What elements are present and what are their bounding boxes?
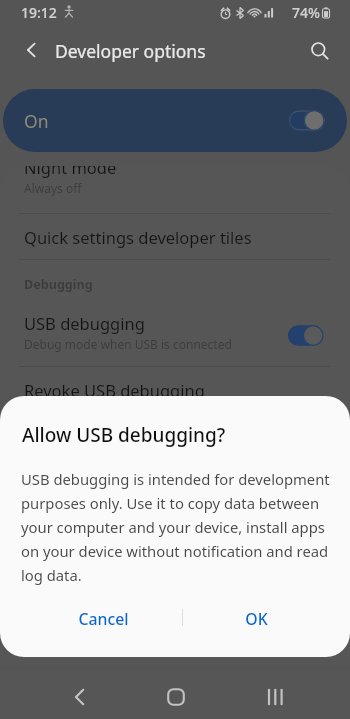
button[interactable]: Search (301, 32, 337, 68)
staticText: Always off (24, 180, 82, 196)
button[interactable]: OK (180, 595, 333, 643)
button[interactable]: On (3, 89, 347, 152)
button[interactable]: Cancel (27, 595, 180, 643)
button[interactable]: Night mode (0, 166, 350, 212)
staticText: USB debugging is intended for developmen… (21, 469, 333, 585)
staticText: 74% (292, 3, 320, 22)
staticText: OK (245, 608, 268, 630)
staticText: Revoke USB debugging (24, 379, 205, 401)
staticText: Debugging (24, 276, 93, 293)
staticText: Debug mode when USB is connected (24, 336, 232, 352)
staticText: Night mode (24, 166, 117, 178)
staticText: Developer options (55, 39, 206, 63)
button[interactable]: USB debugging (0, 305, 350, 366)
staticText: Cancel (78, 608, 129, 630)
button[interactable]: Recent apps (252, 679, 300, 715)
button[interactable]: Home (152, 679, 200, 715)
button[interactable]: Back (12, 32, 48, 68)
button[interactable]: Back (54, 679, 102, 715)
staticText: USB debugging (24, 312, 145, 334)
staticText: On (24, 109, 49, 133)
button[interactable]: Revoke USB debugging (0, 367, 350, 412)
staticText: 19:12 (21, 3, 57, 22)
staticText: Allow USB debugging? (22, 422, 226, 448)
button[interactable]: Quick settings developer tiles (0, 214, 350, 259)
staticText: Quick settings developer tiles (24, 226, 252, 248)
